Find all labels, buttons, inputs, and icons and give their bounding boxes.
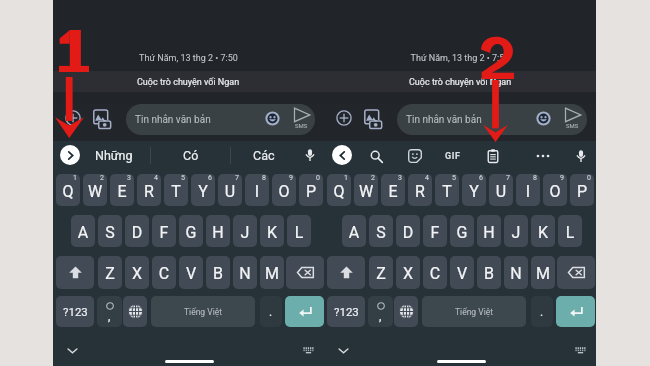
staticText: B	[477, 264, 501, 283]
button[interactable]: A	[342, 215, 366, 247]
button[interactable]: Expand suggestions	[60, 145, 80, 165]
button[interactable]: E	[110, 174, 134, 206]
button[interactable]: L	[558, 215, 582, 247]
button[interactable]: Comma	[97, 296, 122, 327]
button[interactable]: K	[531, 215, 555, 247]
button[interactable]: Add attachment	[62, 107, 84, 129]
staticText: 5	[452, 174, 456, 182]
button[interactable]: Có	[150, 141, 231, 170]
button[interactable]: P	[299, 174, 323, 206]
button[interactable]: H	[477, 215, 501, 247]
button[interactable]: Search	[365, 145, 387, 167]
button[interactable]: Q	[56, 174, 80, 206]
button[interactable]: S	[98, 215, 122, 247]
button[interactable]: ?123	[56, 296, 94, 327]
button[interactable]: D	[125, 215, 149, 247]
button[interactable]: C	[152, 256, 176, 289]
button[interactable]: Emoji	[533, 108, 553, 128]
button[interactable]: Enter	[556, 296, 595, 327]
button[interactable]: M	[260, 256, 284, 289]
button[interactable]: R	[408, 174, 432, 206]
button[interactable]: F	[423, 215, 447, 247]
button[interactable]: Backspace	[286, 256, 324, 289]
button[interactable]: I	[516, 174, 540, 206]
button[interactable]: Tin nhắn văn bản	[126, 104, 315, 135]
staticText: ?123	[334, 305, 359, 318]
button[interactable]: N	[504, 256, 528, 289]
button[interactable]: J	[233, 215, 257, 247]
button[interactable]: Back	[332, 145, 352, 165]
button[interactable]: Tiếng Việt	[151, 296, 255, 327]
button[interactable]: Tin nhắn văn bản	[397, 104, 587, 135]
button[interactable]: Shift	[56, 256, 94, 289]
staticText: J	[504, 223, 528, 242]
staticText: 9	[560, 174, 564, 182]
button[interactable]: Y	[462, 174, 486, 206]
button[interactable]: M	[531, 256, 555, 289]
button[interactable]: GIF	[440, 145, 466, 167]
button[interactable]: Voice input	[300, 145, 320, 165]
button[interactable]: V	[450, 256, 474, 289]
button[interactable]: Clipboard	[482, 145, 504, 167]
button[interactable]: Hide keyboard	[333, 340, 353, 360]
button[interactable]: O	[543, 174, 567, 206]
button[interactable]: Comma	[368, 296, 393, 327]
button[interactable]: Tiếng Việt	[422, 296, 526, 327]
button[interactable]: Change language	[123, 296, 147, 327]
button[interactable]: Hide keyboard	[62, 340, 82, 360]
button[interactable]: X	[396, 256, 420, 289]
button[interactable]: Change language	[394, 296, 418, 327]
button[interactable]: Send SMS	[559, 104, 585, 130]
button[interactable]: Keyboard switcher	[298, 340, 318, 360]
button[interactable]: L	[287, 215, 311, 247]
button[interactable]: N	[233, 256, 257, 289]
button[interactable]: T	[164, 174, 188, 206]
button[interactable]: Shift	[327, 256, 365, 289]
button[interactable]: Các	[229, 141, 299, 170]
button[interactable]: Những	[81, 141, 146, 170]
button[interactable]: Z	[369, 256, 393, 289]
button[interactable]: G	[179, 215, 203, 247]
button[interactable]: Period	[531, 296, 553, 327]
button[interactable]: Send image	[91, 108, 113, 130]
button[interactable]: P	[570, 174, 594, 206]
button[interactable]: B	[477, 256, 501, 289]
button[interactable]: B	[206, 256, 230, 289]
button[interactable]: S	[369, 215, 393, 247]
button[interactable]: Emoji	[262, 108, 282, 128]
button[interactable]: Z	[98, 256, 122, 289]
button[interactable]: R	[137, 174, 161, 206]
button[interactable]: G	[450, 215, 474, 247]
button[interactable]: O	[272, 174, 296, 206]
button[interactable]: H	[206, 215, 230, 247]
button[interactable]: E	[381, 174, 405, 206]
button[interactable]: V	[179, 256, 203, 289]
button[interactable]: W	[83, 174, 107, 206]
button[interactable]: F	[152, 215, 176, 247]
button[interactable]: More options	[532, 145, 554, 167]
button[interactable]: U	[218, 174, 242, 206]
button[interactable]: X	[125, 256, 149, 289]
staticText: V	[450, 264, 474, 283]
button[interactable]: A	[71, 215, 95, 247]
button[interactable]: D	[396, 215, 420, 247]
button[interactable]: Period	[260, 296, 282, 327]
button[interactable]: Send SMS	[288, 104, 314, 130]
button[interactable]: K	[260, 215, 284, 247]
button[interactable]: I	[245, 174, 269, 206]
button[interactable]: Backspace	[557, 256, 595, 289]
button[interactable]: U	[489, 174, 513, 206]
button[interactable]: Y	[191, 174, 215, 206]
button[interactable]: J	[504, 215, 528, 247]
button[interactable]: Stickers	[404, 145, 426, 167]
button[interactable]: T	[435, 174, 459, 206]
button[interactable]: Send image	[362, 108, 384, 130]
button[interactable]: Keyboard switcher	[570, 340, 590, 360]
button[interactable]: Add attachment	[333, 107, 355, 129]
button[interactable]: Q	[327, 174, 351, 206]
button[interactable]: Enter	[285, 296, 324, 327]
button[interactable]: W	[354, 174, 378, 206]
button[interactable]: ?123	[327, 296, 365, 327]
button[interactable]: C	[423, 256, 447, 289]
button[interactable]: Voice input	[570, 145, 592, 167]
